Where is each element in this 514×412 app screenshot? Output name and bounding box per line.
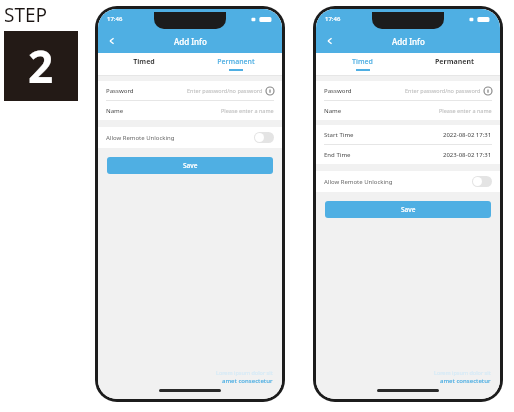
staticText: STEP (4, 2, 48, 28)
staticText: Password (324, 87, 352, 95)
staticText: End Time (324, 151, 351, 159)
button[interactable]: Password (316, 81, 500, 100)
button[interactable]: Save (107, 157, 273, 174)
staticText: Password (106, 87, 134, 95)
button[interactable]: Password (98, 81, 282, 100)
button[interactable]: Start Time (316, 125, 500, 144)
button[interactable]: Info (484, 87, 492, 95)
button[interactable]: Name (98, 101, 282, 120)
staticText: Please enter a name (221, 107, 274, 114)
button[interactable]: Info (266, 87, 274, 95)
staticText: 17:46 (325, 15, 341, 23)
staticText: Permanent (217, 57, 255, 67)
staticText: Enter password/no password (405, 87, 481, 94)
staticText: 2022-08-02 17:31 (443, 131, 492, 139)
staticText: 2023-08-02 17:31 (443, 151, 492, 159)
staticText: Save (183, 161, 198, 170)
button[interactable]: Permanent (408, 53, 500, 75)
button[interactable]: Allow Remote Unlocking (98, 127, 282, 148)
staticText: Timed (133, 57, 155, 67)
staticText: Timed (352, 57, 373, 67)
staticText: amet consectetur (222, 377, 273, 385)
staticText: Lorem ipsum dolor sit (434, 369, 491, 376)
staticText: amet consectetur (440, 377, 491, 385)
staticText: Add Info (392, 36, 425, 47)
button[interactable]: End Time (316, 145, 500, 164)
button[interactable]: Back (104, 33, 120, 49)
staticText: Save (401, 205, 416, 214)
staticText: 17:46 (107, 15, 123, 23)
staticText: Add Info (174, 36, 207, 47)
button[interactable]: Name (316, 101, 500, 120)
button[interactable]: Timed (98, 53, 190, 75)
staticText: Allow Remote Unlocking (324, 178, 393, 186)
button[interactable]: Allow Remote Unlocking (316, 171, 500, 192)
staticText: Name (324, 107, 342, 115)
button[interactable]: Permanent (190, 53, 282, 75)
staticText: 2 (28, 36, 54, 96)
staticText: Please enter a name (439, 107, 492, 114)
button[interactable]: Timed (316, 53, 408, 75)
staticText: Permanent (435, 57, 474, 67)
staticText: Name (106, 107, 124, 115)
staticText: Allow Remote Unlocking (106, 134, 175, 142)
button[interactable]: Save (325, 201, 491, 218)
button[interactable]: Back (322, 33, 338, 49)
staticText: Lorem ipsum dolor sit (216, 369, 273, 376)
staticText: Start Time (324, 131, 354, 139)
staticText: Enter password/no password (187, 87, 263, 94)
